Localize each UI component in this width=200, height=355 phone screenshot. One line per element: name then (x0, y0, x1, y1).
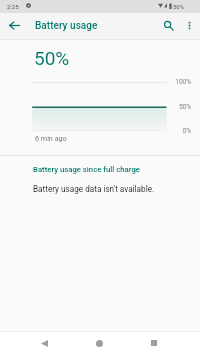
staticText: 6 min ago (35, 134, 67, 142)
button[interactable]: Search (156, 13, 180, 37)
staticText: Battery usage data isn't available. (33, 184, 155, 194)
staticText: 50% (178, 103, 191, 111)
button[interactable]: Recent apps (144, 333, 164, 353)
button[interactable]: Home (89, 333, 109, 353)
staticText: Battery usage since full charge (33, 165, 140, 174)
staticText: 100% (175, 78, 191, 86)
staticText: 0% (182, 127, 191, 135)
button[interactable]: Navigate up (2, 13, 26, 37)
staticText: Battery usage (35, 20, 98, 32)
staticText: 50% (173, 3, 185, 10)
button[interactable]: Back (34, 333, 54, 353)
staticText: 50% (34, 47, 70, 69)
button[interactable]: More options (177, 13, 200, 37)
staticText: 2:25 (7, 3, 19, 10)
